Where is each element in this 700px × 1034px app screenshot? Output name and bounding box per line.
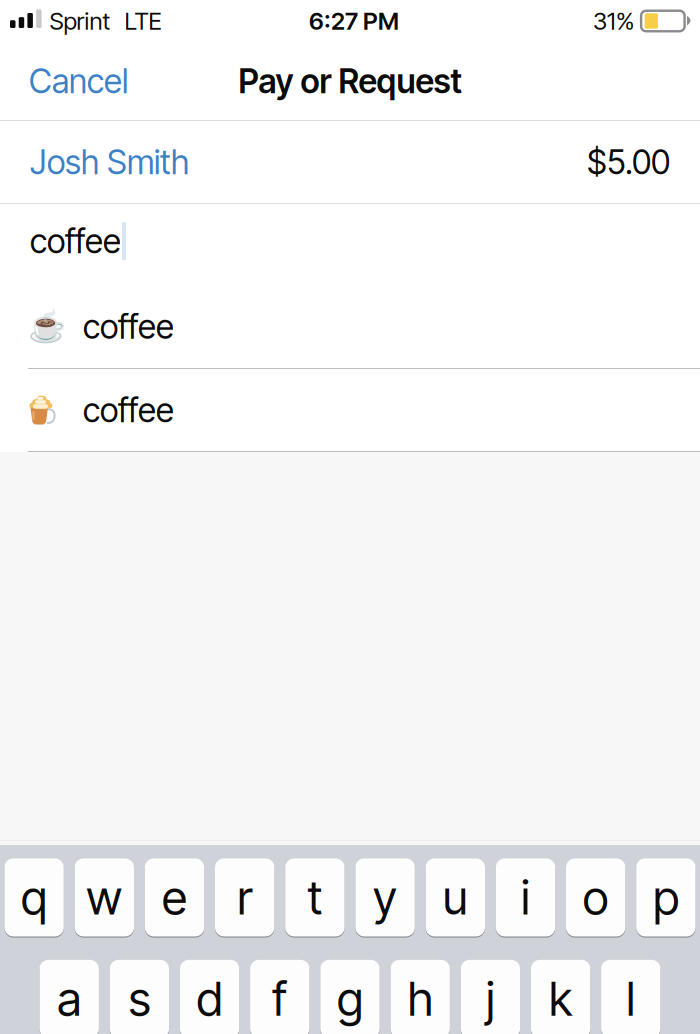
staticText: ☕ <box>28 308 66 344</box>
button[interactable]: q <box>4 857 64 938</box>
staticText: $5.00 <box>587 142 670 182</box>
staticText: 31% <box>593 6 634 35</box>
button[interactable]: i <box>496 857 555 938</box>
staticText: o <box>583 869 609 926</box>
staticText: r <box>237 869 252 926</box>
button[interactable]: r <box>215 857 274 938</box>
button[interactable]: t <box>285 857 345 938</box>
staticText: coffee <box>83 306 174 347</box>
staticText: j <box>486 971 495 1027</box>
button[interactable]: j <box>461 959 520 1034</box>
button[interactable]: o <box>566 857 625 938</box>
staticText: u <box>443 869 468 926</box>
staticText: t <box>307 869 322 926</box>
button[interactable]: h <box>390 959 450 1034</box>
staticText: g <box>337 971 363 1027</box>
button[interactable]: w <box>75 857 134 938</box>
button[interactable]: coffee <box>0 369 700 451</box>
button[interactable]: p <box>636 857 696 938</box>
button[interactable]: l <box>601 959 660 1034</box>
button[interactable]: y <box>355 857 415 938</box>
staticText: k <box>549 971 572 1027</box>
staticText: Josh Smith <box>30 142 189 182</box>
staticText: Cancel <box>29 61 128 101</box>
button[interactable]: e <box>145 857 204 938</box>
staticText: Pay or Request <box>238 61 461 101</box>
staticText: 6:27 PM <box>309 6 399 35</box>
staticText: s <box>128 971 150 1027</box>
button[interactable]: g <box>320 959 380 1034</box>
staticText: a <box>57 971 81 1027</box>
staticText: p <box>653 869 679 926</box>
button[interactable]: ☕ <box>0 285 700 368</box>
button[interactable]: d <box>180 959 239 1034</box>
staticText: y <box>373 869 397 926</box>
staticText: l <box>626 971 635 1027</box>
button[interactable]: a <box>39 959 99 1034</box>
staticText: Sprint <box>50 6 111 35</box>
button[interactable]: Cancel <box>0 48 148 114</box>
staticText: f <box>272 971 287 1027</box>
staticText: coffee <box>30 221 121 261</box>
staticText: d <box>197 971 223 1027</box>
staticText: w <box>86 869 122 926</box>
staticText: e <box>162 869 187 926</box>
button[interactable]: f <box>250 959 309 1034</box>
button[interactable]: u <box>426 857 485 938</box>
staticText: h <box>408 971 433 1027</box>
staticText: i <box>521 869 530 926</box>
staticText: q <box>21 869 47 926</box>
button[interactable]: Josh Smith <box>0 121 700 203</box>
button[interactable]: s <box>110 959 169 1034</box>
staticText: LTE <box>125 6 162 35</box>
button[interactable]: k <box>531 959 590 1034</box>
staticText: coffee <box>83 390 174 430</box>
